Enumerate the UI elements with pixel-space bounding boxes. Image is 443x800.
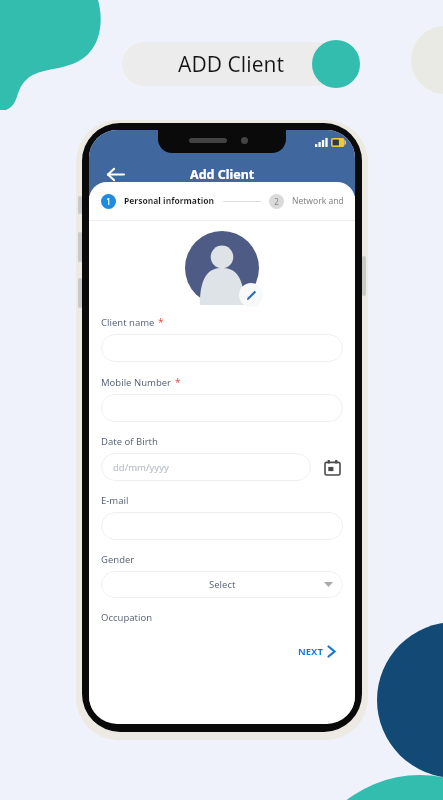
button[interactable]: Pick date [321, 456, 343, 478]
button[interactable] [101, 512, 343, 540]
staticText: dd/mm/yyyy [113, 461, 169, 474]
staticText: Network and [292, 195, 344, 207]
staticText: * [158, 315, 164, 329]
button[interactable] [101, 394, 343, 422]
staticText: Mobile Number [101, 376, 172, 389]
staticText: ADD Client [178, 50, 285, 79]
staticText: Personal information [124, 195, 215, 207]
button[interactable]: Back [97, 156, 133, 192]
button[interactable]: Select [101, 571, 343, 598]
button[interactable]: ADD Client [122, 42, 340, 86]
staticText: * [175, 375, 181, 389]
button[interactable] [101, 334, 343, 362]
staticText: NEXT [298, 645, 323, 658]
staticText: Date of Birth [101, 435, 158, 448]
staticText: 1 [106, 196, 111, 207]
button[interactable]: Edit photo [239, 283, 263, 307]
staticText: E-mail [101, 494, 129, 507]
staticText: Occupation [101, 611, 153, 624]
button[interactable]: 1 [101, 194, 116, 209]
button[interactable]: NEXT [294, 643, 339, 660]
staticText: 2 [274, 196, 279, 207]
staticText: Gender [101, 553, 135, 566]
staticText: Select [209, 578, 236, 591]
staticText: Client name [101, 316, 155, 329]
button[interactable]: dd/mm/yyyy [101, 453, 311, 481]
button[interactable]: 2 [269, 194, 284, 209]
staticText: Add Client [190, 166, 255, 183]
